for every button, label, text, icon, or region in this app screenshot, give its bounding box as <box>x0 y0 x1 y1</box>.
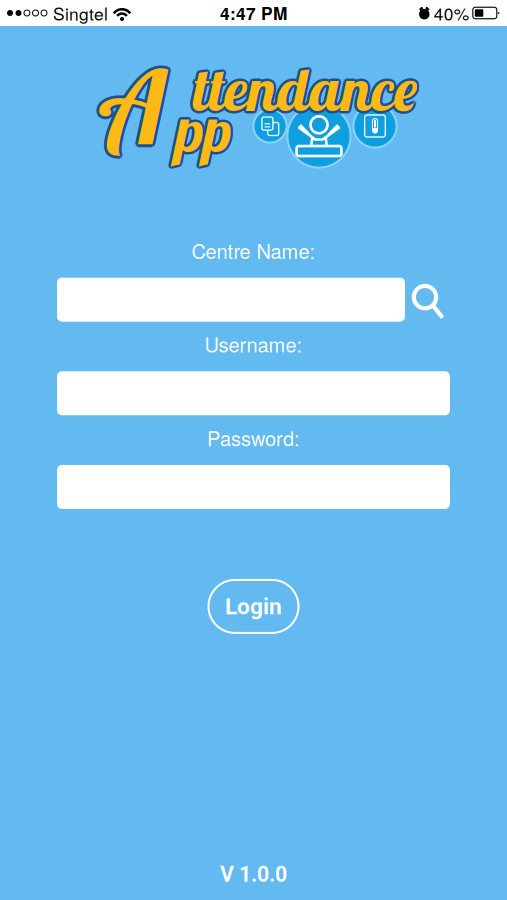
button[interactable]: Search centre <box>409 281 449 325</box>
staticText: pp <box>173 92 229 167</box>
staticText: ttendance <box>192 53 418 128</box>
staticText: A <box>101 45 162 172</box>
staticText: pp <box>173 94 229 169</box>
staticText: Login <box>225 593 282 620</box>
staticText: A <box>105 41 166 168</box>
staticText: 40% <box>434 1 469 25</box>
staticText: Username: <box>204 330 302 358</box>
staticText: ttendance <box>194 49 420 124</box>
staticText: A <box>103 43 164 170</box>
staticText: ttendance <box>190 49 416 124</box>
staticText: pp <box>175 92 231 167</box>
staticText: ttendance <box>190 53 416 128</box>
staticText: pp <box>175 90 231 165</box>
staticText: ttendance <box>194 53 420 128</box>
staticText: ttendance <box>192 51 418 126</box>
staticText: pp <box>173 90 229 165</box>
staticText: ttendance <box>194 51 420 126</box>
staticText: 4:47 PM <box>220 1 287 25</box>
button[interactable]: Login <box>208 580 298 633</box>
staticText: pp <box>177 94 233 169</box>
staticText: A <box>101 41 162 168</box>
staticText: pp <box>175 94 231 169</box>
staticText: pp <box>177 90 233 165</box>
staticText: Centre Name: <box>191 236 315 265</box>
staticText: A <box>105 45 166 172</box>
staticText: Singtel <box>53 1 108 25</box>
staticText: Password: <box>207 423 300 452</box>
staticText: A <box>103 40 164 167</box>
staticText: ttendance <box>190 51 416 126</box>
staticText: ttendance <box>192 49 418 124</box>
staticText: A <box>106 43 167 170</box>
staticText: A <box>103 46 164 172</box>
staticText: V 1.0.0 <box>220 862 287 887</box>
staticText: A <box>100 43 161 170</box>
staticText: pp <box>177 92 233 167</box>
